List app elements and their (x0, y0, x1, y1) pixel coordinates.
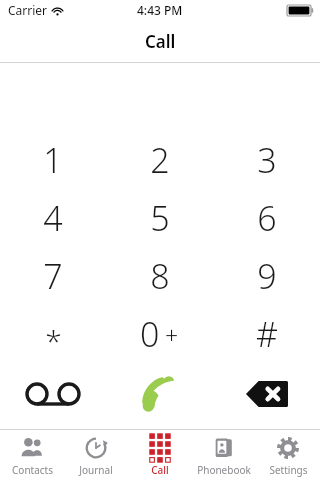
staticText: 0 (140, 311, 160, 357)
button[interactable]: 0 (106, 305, 213, 363)
button[interactable]: 3 (213, 131, 320, 189)
staticText: Settings (269, 463, 308, 477)
staticText: Call (151, 463, 169, 477)
staticText: 6 (257, 195, 277, 241)
button[interactable]: Backspace (213, 369, 320, 419)
staticText: Call (145, 30, 176, 53)
staticText: 7 (43, 253, 63, 299)
button[interactable]: 9 (213, 247, 320, 305)
staticText: # (256, 311, 278, 357)
staticText: 2 (150, 137, 170, 183)
button[interactable]: 4 (0, 189, 106, 247)
button[interactable]: Contacts (0, 430, 64, 480)
staticText: 8 (150, 253, 170, 299)
button[interactable]: 1 (0, 131, 106, 189)
button[interactable]: Voicemail (0, 369, 106, 419)
staticText: 3 (257, 137, 277, 183)
staticText: 4:43 PM (137, 2, 183, 18)
staticText: 4 (43, 195, 63, 241)
staticText: Contacts (12, 463, 53, 477)
button[interactable]: Journal (64, 430, 128, 480)
staticText: 5 (150, 195, 170, 241)
staticText: Journal (79, 463, 113, 477)
button[interactable]: Call (106, 369, 213, 419)
staticText: Carrier (8, 2, 48, 18)
button[interactable]: 8 (106, 247, 213, 305)
button[interactable]: Settings (256, 430, 320, 480)
staticText: + (165, 319, 179, 350)
button[interactable]: Phonebook (192, 430, 256, 480)
staticText: 9 (257, 253, 277, 299)
button[interactable]: # (213, 305, 320, 363)
staticText: 1 (43, 137, 63, 183)
button[interactable]: * (0, 305, 106, 363)
staticText: Phonebook (197, 463, 251, 477)
staticText: * (45, 320, 62, 361)
button[interactable]: Call (128, 430, 192, 480)
button[interactable]: 5 (106, 189, 213, 247)
button[interactable]: 2 (106, 131, 213, 189)
button[interactable]: 7 (0, 247, 106, 305)
button[interactable]: 6 (213, 189, 320, 247)
